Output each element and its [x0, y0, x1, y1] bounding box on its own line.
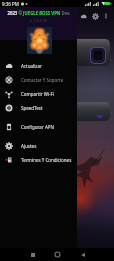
staticText: CONECTAR — [4, 128, 22, 133]
button[interactable]: Contactar Y Soporte — [0, 73, 77, 87]
staticText: Compartir Wi-Fi — [21, 91, 55, 97]
button[interactable]: CONECTAR — [4, 127, 22, 134]
button[interactable]: Configurar APN — [0, 120, 77, 134]
button[interactable]: Cloud — [78, 11, 88, 21]
button[interactable]: Settings — [90, 11, 100, 21]
button[interactable]: Recents — [26, 248, 39, 261]
button[interactable] — [4, 102, 110, 121]
button[interactable]: Compartir Wi-Fi — [0, 87, 77, 101]
button[interactable]: Back — [76, 248, 89, 261]
button[interactable] — [4, 39, 110, 66]
staticText: 2023 © JUEGLE BOSS VPN Dev. — [7, 10, 71, 16]
staticText: Ajustes — [21, 143, 37, 149]
staticText: 9:36 PM — [2, 1, 19, 7]
staticText: Actualizar — [21, 63, 42, 69]
button[interactable]: SpeedTest — [0, 101, 77, 115]
staticText: Terminos Y Condiciones — [21, 157, 72, 163]
button[interactable]: Home — [51, 248, 64, 261]
staticText: MAESTRO — [4, 26, 28, 33]
staticText: v. 1.0.2 (2) — [30, 18, 47, 23]
staticText: Configurar APN — [21, 124, 54, 130]
button[interactable]: Actualizar — [0, 59, 77, 73]
staticText: SpeedTest — [21, 105, 43, 111]
button[interactable]: More options — [101, 11, 111, 21]
button[interactable]: Terminos Y Condiciones — [0, 153, 77, 167]
staticText: Contactar Y Soporte — [21, 77, 64, 83]
button[interactable]: Ajustes — [0, 139, 77, 153]
